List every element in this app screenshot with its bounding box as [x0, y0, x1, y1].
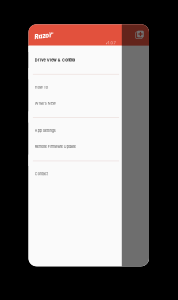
staticText: Contact: [35, 172, 48, 176]
button[interactable]: Add device: [136, 31, 144, 39]
staticText: TM: [49, 32, 53, 35]
button[interactable]: App Settings: [28, 123, 122, 139]
staticText: How To: [35, 85, 48, 89]
button[interactable]: Drive View & Control: [28, 52, 122, 68]
staticText: App Settings: [35, 128, 56, 133]
staticText: Razor: [34, 33, 52, 41]
button[interactable]: Remote Firmware Update: [28, 139, 122, 155]
staticText: What's New: [35, 101, 56, 105]
button[interactable]: Contact: [28, 166, 122, 182]
staticText: Remote Firmware Update: [35, 144, 76, 149]
button[interactable]: What's New: [28, 95, 122, 111]
staticText: v1.0.7: [105, 40, 115, 45]
button[interactable]: How To: [28, 79, 122, 95]
staticText: Drive View & Control: [35, 58, 75, 62]
